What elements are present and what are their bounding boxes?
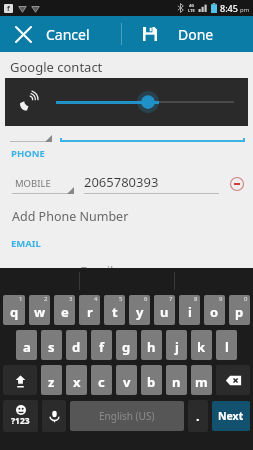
button[interactable]: 3 [54,295,75,325]
staticText: . [196,407,200,425]
staticText: MOBILE [15,177,51,190]
button[interactable]: d [66,330,87,360]
staticText: u [160,303,169,321]
staticText: f [7,4,10,13]
button[interactable]: Shift [3,365,37,395]
staticText: v [123,373,131,391]
staticText: j [175,338,179,356]
staticText: x [73,373,81,391]
button[interactable]: 8 [179,295,200,325]
staticText: p [235,303,244,321]
button[interactable]: Period [188,400,208,432]
button[interactable]: Done [178,16,253,52]
staticText: y [136,303,144,321]
staticText: Done [178,25,214,44]
staticText: 3 [69,295,73,303]
button[interactable]: Voice input [42,400,66,432]
staticText: Add Phone Number [12,208,129,225]
button[interactable]: n [166,365,187,395]
button[interactable]: j [166,330,187,360]
staticText: LTE [188,8,195,13]
button[interactable]: x [66,365,87,395]
staticText: EMAIL [11,237,41,250]
button[interactable]: g [116,330,137,360]
staticText: i [188,303,192,321]
staticText: k [197,338,206,356]
staticText: ?123 [11,415,30,427]
staticText: Email [80,262,114,280]
button[interactable]: f [91,330,112,360]
staticText: 7 [169,295,173,303]
button[interactable]: v [116,365,137,395]
staticText: 1 [19,295,23,303]
button[interactable]: m [191,365,212,395]
button[interactable]: English (US) [70,401,184,431]
staticText: b [147,373,156,391]
staticText: 4G [189,3,195,8]
button[interactable]: b [141,365,162,395]
button[interactable]: 0 [229,295,250,325]
button[interactable]: Add Phone Number [0,208,253,225]
staticText: pm [240,6,250,14]
staticText: r [87,303,93,321]
staticText: 5 [119,295,123,303]
button[interactable]: s [41,330,62,360]
button[interactable]: Remove phone number [227,174,247,194]
staticText: 4 [94,295,98,303]
staticText: a [23,338,31,356]
button[interactable]: 9 [204,295,225,325]
button[interactable]: Next [212,401,250,431]
button[interactable]: MOBILE [0,170,253,194]
staticText: Cancel [46,25,90,44]
staticText: z [48,373,55,391]
staticText: 8:45 [220,2,238,14]
staticText: PHONE [11,147,45,160]
staticText: 8 [194,295,198,303]
button[interactable]: 7 [154,295,175,325]
staticText: 6 [144,295,148,303]
button[interactable]: c [91,365,112,395]
button[interactable]: 5 [104,295,125,325]
button[interactable]: 2 [29,295,50,325]
staticText: f [99,338,105,356]
button[interactable]: Save [122,16,178,52]
button[interactable]: l [216,330,237,360]
button[interactable]: Symbols [3,400,38,432]
staticText: c [98,373,105,391]
staticText: w [34,303,46,321]
staticText: English (US) [99,409,155,423]
staticText: t [112,303,118,321]
staticText: h [147,338,156,356]
staticText: q [10,303,19,321]
button[interactable]: k [191,330,212,360]
button[interactable]: Cancel [46,16,121,52]
staticText: g [122,338,131,356]
button[interactable]: 6 [129,295,150,325]
staticText: o [210,303,219,321]
staticText: 2065780393 [84,173,159,191]
button[interactable]: 1 [3,295,25,325]
button[interactable]: Cancel [0,16,46,52]
button[interactable]: h [141,330,162,360]
button[interactable]: z [41,365,62,395]
staticText: s [48,338,55,356]
staticText: Google contact [10,58,103,76]
button[interactable]: Backspace [216,365,250,395]
button[interactable] [56,90,234,114]
staticText: 2 [44,295,48,303]
staticText: Next [218,409,244,423]
staticText: 9 [219,295,223,303]
staticText: 0 [244,295,248,303]
staticText: n [172,373,181,391]
button[interactable]: 4 [79,295,100,325]
staticText: e [61,303,69,321]
staticText: d [72,338,81,356]
staticText: HOME [22,266,51,279]
staticText: m [195,373,208,391]
button[interactable]: a [16,330,37,360]
staticText: l [225,338,229,356]
